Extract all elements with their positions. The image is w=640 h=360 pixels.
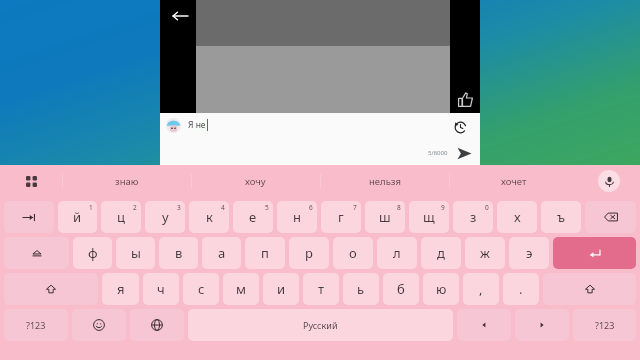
staticText: 3 [177,203,181,212]
button[interactable]: д [421,237,461,269]
button[interactable]: ь [343,273,379,305]
other: Backspace [604,210,618,224]
other: Shift [45,283,57,295]
button[interactable]: ?123 [573,309,636,341]
button[interactable]: м [223,273,259,305]
button[interactable]: п [245,237,285,269]
staticText: п [261,244,269,262]
staticText: й [73,208,82,226]
button[interactable]: ы [116,237,155,269]
button[interactable]: щ [409,201,449,233]
button[interactable]: э [509,237,549,269]
button[interactable]: хочу [191,165,320,197]
button[interactable]: с [183,273,219,305]
other: Move cursor left [479,320,489,330]
button[interactable]: Move cursor right [515,309,569,341]
other: Caps lock [31,247,43,259]
staticText: ъ [557,208,566,226]
button[interactable]: ж [465,237,505,269]
staticText: 2 [133,203,137,212]
staticText: м [236,280,246,298]
button[interactable]: г [321,201,361,233]
button[interactable]: Backspace [585,201,636,233]
staticText: 0 [485,203,489,212]
button[interactable]: Emoji [72,309,126,341]
button[interactable]: ц [101,201,141,233]
button[interactable]: и [263,273,299,305]
button[interactable]: Send [452,141,476,165]
button[interactable]: ъ [541,201,581,233]
button[interactable]: Caps lock [4,237,69,269]
button[interactable]: ю [423,273,459,305]
button[interactable]: а [202,237,241,269]
button[interactable]: Enter [553,237,636,269]
staticText: х [514,208,521,226]
staticText: о [349,244,357,262]
staticText: р [305,244,313,262]
button[interactable]: н [277,201,317,233]
button[interactable]: Clipboard [0,165,62,197]
button[interactable]: Shift [4,273,98,305]
button[interactable]: о [333,237,373,269]
staticText: з [470,208,477,226]
button[interactable]: . [503,273,539,305]
button[interactable]: Shift [543,273,636,305]
button[interactable]: Voice input [578,165,640,197]
staticText: ц [117,208,125,226]
button[interactable]: б [383,273,419,305]
button[interactable]: к [189,201,229,233]
button[interactable]: у [145,201,185,233]
staticText: и [277,280,286,298]
staticText: ш [379,208,391,226]
button[interactable]: Tab [4,201,54,233]
staticText: ж [480,244,490,262]
button[interactable]: , [463,273,499,305]
button[interactable]: ч [143,273,179,305]
staticText: л [393,244,401,262]
button[interactable]: т [303,273,339,305]
staticText: знаю [115,175,139,188]
staticText: 6 [309,203,313,212]
button[interactable]: ф [73,237,112,269]
staticText: н [293,208,301,226]
staticText: щ [423,208,435,226]
staticText: 4 [221,203,225,212]
staticText: 5/6000 [428,149,448,157]
button[interactable]: ш [365,201,405,233]
button[interactable]: в [159,237,198,269]
staticText: 1 [89,203,93,212]
staticText: ч [157,280,165,298]
button[interactable]: е [233,201,273,233]
button[interactable]: хочет [449,165,578,197]
button[interactable]: р [289,237,329,269]
staticText: д [437,244,445,262]
staticText: ь [357,280,365,298]
staticText: г [338,208,344,226]
button[interactable]: з [453,201,493,233]
button[interactable]: я [102,273,139,305]
other: Move cursor right [537,320,547,330]
staticText: б [397,280,405,298]
staticText: . [519,280,523,298]
button[interactable]: Profile [166,118,181,133]
staticText: е [249,208,257,226]
button[interactable]: Change language [130,309,184,341]
button[interactable]: х [497,201,537,233]
staticText: Я не [188,119,206,131]
button[interactable]: ?123 [4,309,68,341]
staticText: 7 [353,203,357,212]
button[interactable]: нельзя [320,165,449,197]
staticText: , [479,280,483,298]
button[interactable]: л [377,237,417,269]
button[interactable]: знаю [62,165,191,197]
button[interactable]: Back [164,0,196,32]
button[interactable]: Русский [188,309,453,341]
staticText: ю [436,280,447,298]
staticText: хочу [245,175,266,188]
button[interactable]: Move cursor left [457,309,511,341]
other: Tab [23,211,36,224]
button[interactable]: й [58,201,97,233]
staticText: хочет [501,175,527,188]
button[interactable]: Like [452,86,478,112]
button[interactable]: History [448,115,472,139]
